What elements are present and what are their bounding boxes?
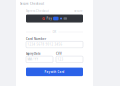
staticText: 123 (58, 58, 64, 61)
staticText: Pay with Card (44, 70, 64, 74)
staticText: Expiry Date (26, 52, 41, 55)
staticText: Secure Checkout (20, 2, 44, 5)
button[interactable]: Pay with Card (26, 68, 83, 76)
staticText: Express Checkout (26, 9, 49, 13)
staticText: OR (52, 30, 56, 34)
staticText: Card Number (26, 37, 46, 41)
staticText: Secure (74, 9, 83, 13)
staticText: MM / YY (28, 58, 39, 61)
staticText: G (42, 16, 45, 21)
staticText: CVV (56, 52, 62, 55)
button[interactable]: G (16, 14, 93, 22)
staticText: Pay (46, 17, 51, 20)
staticText: 1234 5678 9012 3456 (28, 43, 63, 46)
